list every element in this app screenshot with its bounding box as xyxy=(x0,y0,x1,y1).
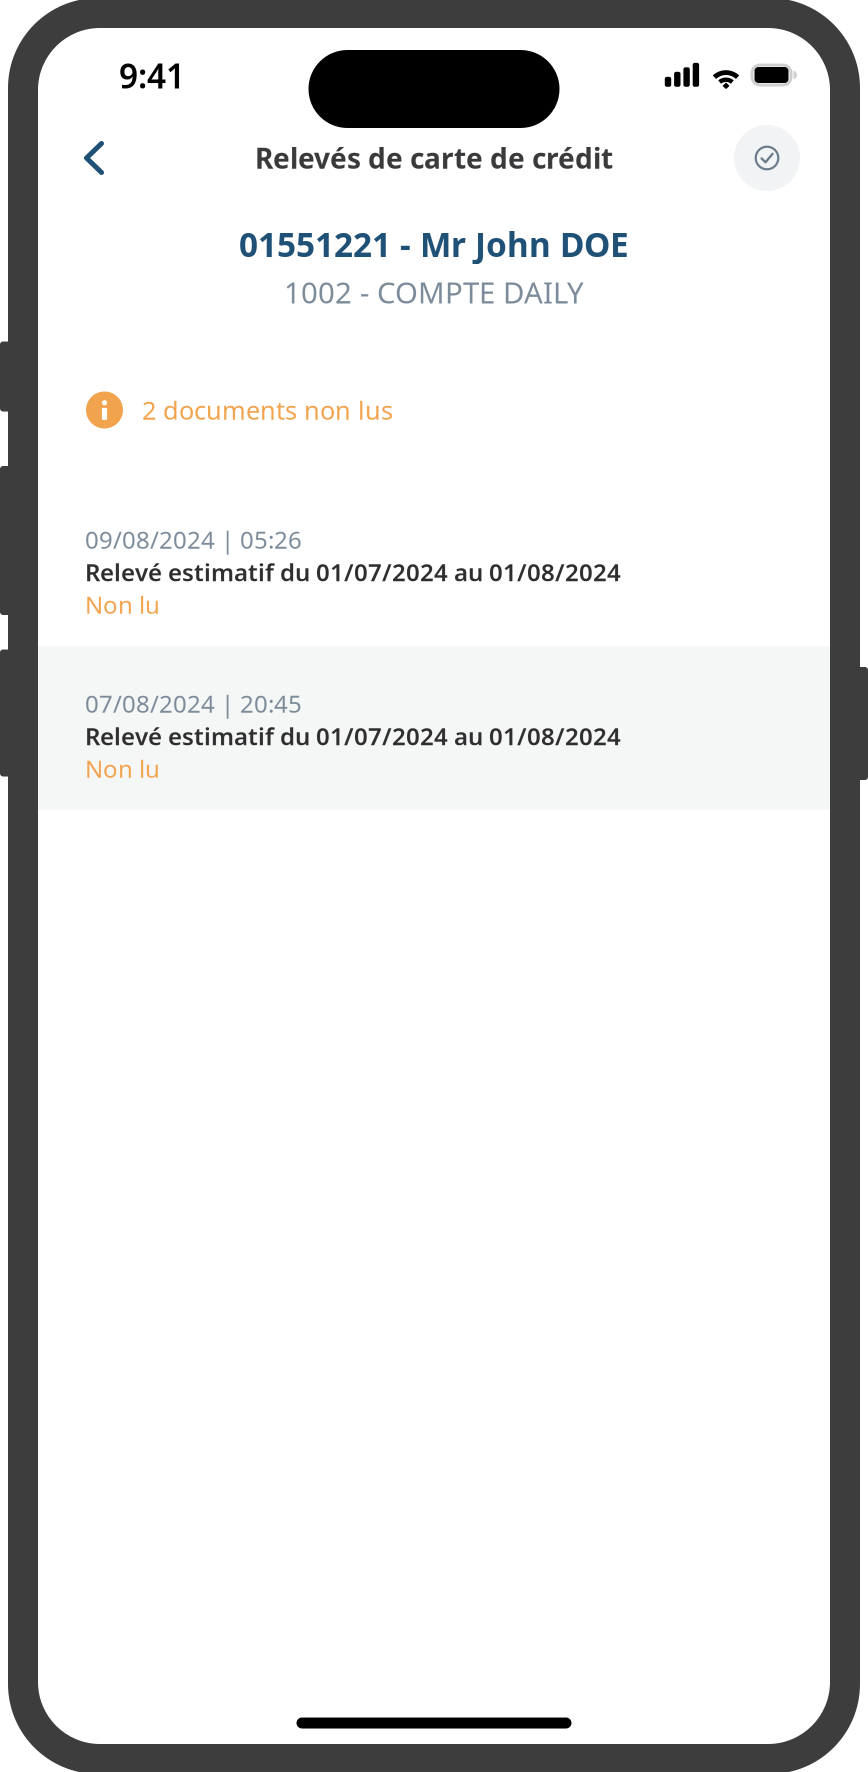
staticText: 01551221 - Mr John DOE xyxy=(239,222,629,266)
button[interactable]: Retour xyxy=(52,122,136,194)
staticText: 1002 - COMPTE DAILY xyxy=(284,272,584,311)
button[interactable]: Tout marquer comme lu xyxy=(729,120,805,196)
staticText: 9:41 xyxy=(119,53,185,98)
staticText: Relevé estimatif du 01/07/2024 au 01/08/… xyxy=(85,720,621,752)
staticText: Non lu xyxy=(85,589,160,620)
staticText: Relevés de carte de crédit xyxy=(255,139,613,177)
staticText: 2 documents non lus xyxy=(142,393,393,427)
button[interactable]: 09/08/2024 | 05:26 xyxy=(38,482,830,646)
staticText: Non lu xyxy=(85,753,160,784)
button[interactable]: 07/08/2024 | 20:45 xyxy=(38,646,830,810)
staticText: 07/08/2024 | 20:45 xyxy=(85,688,302,719)
staticText: 09/08/2024 | 05:26 xyxy=(85,524,302,555)
staticText: Relevé estimatif du 01/07/2024 au 01/08/… xyxy=(85,556,621,588)
